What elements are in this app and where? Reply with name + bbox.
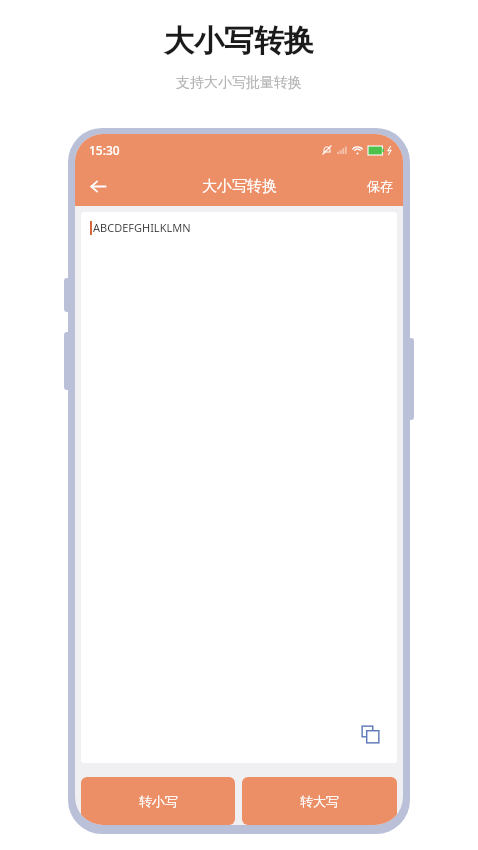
staticText: 大小写转换 [164, 22, 314, 60]
button[interactable]: 保存 [357, 170, 403, 202]
staticText: 大小写转换 [202, 177, 277, 196]
staticText: 转大写 [300, 793, 339, 809]
button[interactable]: Copy [355, 719, 385, 749]
button[interactable]: Back [81, 169, 115, 203]
staticText: 15:30 [89, 142, 120, 158]
staticText: ABCDEFGHILKLMN [93, 220, 191, 235]
button[interactable]: ABCDEFGHILKLMN [81, 212, 397, 763]
staticText: 转小写 [139, 793, 178, 809]
button[interactable]: 转小写 [81, 777, 235, 825]
staticText: 支持大小写批量转换 [176, 74, 302, 92]
staticText: 保存 [367, 178, 393, 194]
button[interactable]: 转大写 [242, 777, 397, 825]
